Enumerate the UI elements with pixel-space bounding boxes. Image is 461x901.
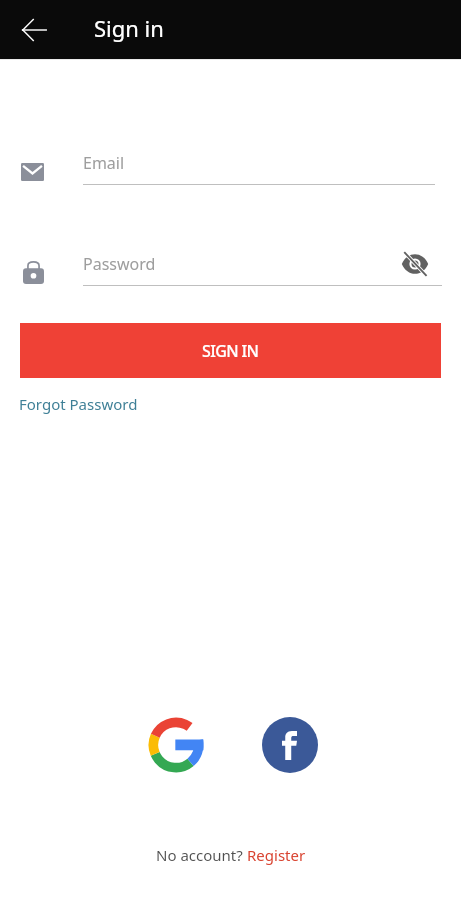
staticText: Email (83, 152, 125, 174)
button[interactable]: Back (10, 6, 58, 54)
button[interactable]: SIGN IN (20, 323, 441, 378)
staticText: Sign in (94, 13, 164, 43)
staticText: SIGN IN (202, 340, 259, 362)
button[interactable]: Password (20, 249, 395, 287)
staticText: No account? (156, 845, 247, 865)
staticText: Password (83, 253, 156, 275)
button[interactable]: Email (20, 148, 441, 186)
button[interactable]: Forgot Password (19, 394, 138, 414)
staticText: Register (247, 845, 306, 865)
button[interactable]: Toggle password visibility (401, 250, 429, 278)
staticText: Forgot Password (19, 394, 138, 414)
button[interactable]: Sign in with Facebook (262, 717, 318, 773)
button[interactable]: Sign in with Google (147, 716, 205, 774)
button[interactable]: Register (247, 845, 306, 865)
